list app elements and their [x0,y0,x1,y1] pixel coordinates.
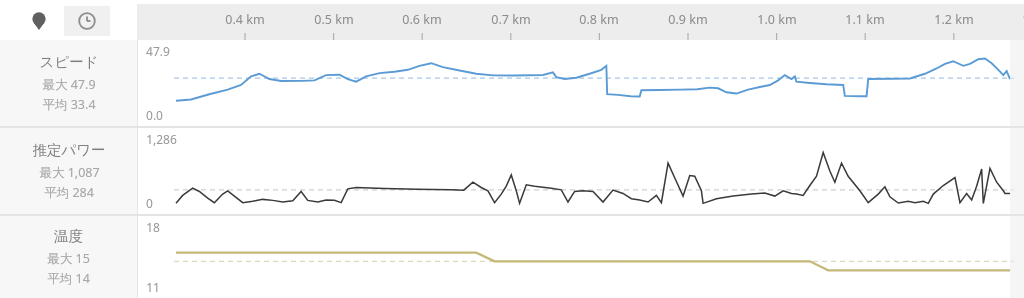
staticText: 最大 15 [47,250,90,267]
staticText: 0.6 km [402,11,442,28]
staticText: 47.9 [146,43,170,59]
button[interactable]: 温度 [0,216,1024,298]
staticText: 推定パワー [32,141,106,159]
staticText: 平均 284 [44,184,94,201]
staticText: 0.9 km [668,11,708,28]
button[interactable]: Show by distance [16,6,62,36]
staticText: 18 [146,219,160,235]
staticText: 温度 [54,227,83,245]
staticText: 0.7 km [491,11,531,28]
button[interactable]: 推定パワー [0,128,1024,214]
staticText: 0.4 km [225,11,265,28]
staticText: 1.0 km [757,11,797,28]
staticText: 0.8 km [579,11,619,28]
button[interactable]: スピード [0,40,1024,126]
staticText: 1.1 km [845,11,885,28]
staticText: 0.0 [146,107,163,123]
staticText: 1.2 km [934,11,974,28]
staticText: スピード [39,53,99,71]
staticText: 1.3 km [1022,11,1024,28]
staticText: 最大 47.9 [42,76,96,93]
staticText: 0 [146,195,153,211]
button[interactable]: Show by time [64,6,110,36]
staticText: 最大 1,087 [39,164,100,181]
staticText: 平均 14 [47,270,90,287]
staticText: 平均 33.4 [42,96,96,113]
staticText: 0.5 km [314,11,354,28]
staticText: 1,286 [146,131,177,147]
staticText: 11 [146,279,160,295]
